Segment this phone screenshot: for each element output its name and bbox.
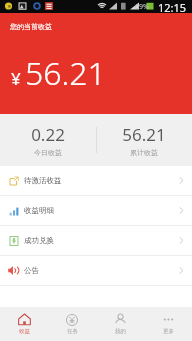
staticText: 收益 bbox=[19, 328, 30, 335]
button[interactable]: 待激活收益 bbox=[0, 166, 192, 195]
button[interactable]: 收益 bbox=[0, 307, 48, 341]
staticText: 成功兑换 bbox=[24, 236, 54, 245]
button[interactable]: 我的 bbox=[96, 307, 144, 341]
staticText: 今日收益 bbox=[34, 148, 62, 157]
staticText: 收益明细 bbox=[24, 206, 54, 215]
staticText: 我的 bbox=[115, 328, 126, 335]
staticText: 待激活收益 bbox=[24, 176, 62, 185]
staticText: 0.22 bbox=[31, 123, 65, 146]
staticText: 56.21 bbox=[25, 51, 106, 95]
staticText: 56.21 bbox=[122, 123, 166, 146]
button[interactable]: 成功兑换 bbox=[0, 226, 192, 255]
button[interactable]: 任务 bbox=[48, 307, 96, 341]
staticText: 您的当前收益 bbox=[10, 22, 52, 31]
button[interactable]: 更多 bbox=[144, 307, 192, 341]
staticText: 累计收益 bbox=[130, 148, 158, 157]
staticText: 更多 bbox=[163, 328, 174, 335]
button[interactable]: 收益明细 bbox=[0, 196, 192, 225]
button[interactable]: 公告 bbox=[0, 256, 192, 285]
staticText: 公告 bbox=[24, 266, 39, 275]
staticText: 69% bbox=[135, 2, 149, 12]
staticText: 12:15 bbox=[158, 0, 187, 13]
staticText: 任务 bbox=[67, 328, 78, 335]
staticText: ¥ bbox=[11, 67, 21, 90]
